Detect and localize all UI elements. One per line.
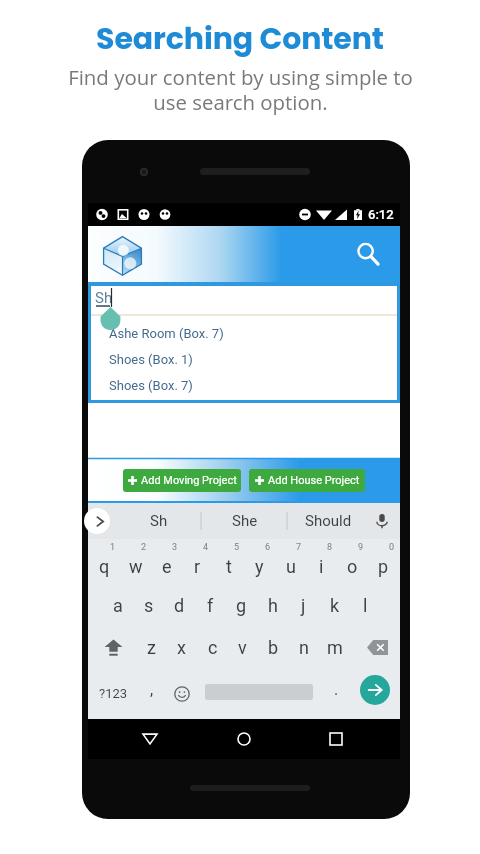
button[interactable]: Add Moving Project	[123, 469, 241, 492]
staticText: .	[334, 680, 339, 699]
button[interactable]: ?123	[89, 668, 137, 719]
staticText: l	[363, 595, 368, 616]
staticText: w	[129, 556, 143, 577]
staticText: o	[347, 556, 358, 577]
staticText: Sh	[150, 512, 168, 530]
button[interactable]: Shift	[93, 626, 133, 668]
button[interactable]: v	[227, 626, 258, 668]
button[interactable]: 5	[213, 539, 244, 584]
staticText: 5	[234, 542, 240, 553]
staticText: h	[268, 595, 278, 616]
button[interactable]: 7	[275, 539, 306, 584]
button[interactable]: f	[195, 584, 226, 626]
button[interactable]: m	[319, 626, 350, 668]
staticText: 3	[172, 542, 178, 553]
button[interactable]: Back	[130, 719, 170, 759]
button[interactable]: b	[258, 626, 289, 668]
staticText: r	[194, 556, 201, 577]
button[interactable]: k	[319, 584, 350, 626]
button[interactable]: n	[288, 626, 319, 668]
staticText: 8	[327, 542, 333, 553]
staticText: i	[319, 556, 324, 577]
staticText: 6	[265, 542, 271, 553]
button[interactable]: h	[257, 584, 288, 626]
button[interactable]: 9	[337, 539, 368, 584]
staticText: c	[208, 637, 218, 658]
button[interactable]: 2	[120, 539, 151, 584]
staticText: ,	[150, 680, 154, 699]
staticText: Shoes (Box. 7)	[109, 378, 193, 393]
staticText: Shoes (Box. 1)	[109, 352, 193, 367]
button[interactable]: 1	[89, 539, 120, 584]
button[interactable]: Expand suggestions	[84, 508, 110, 534]
staticText: q	[99, 556, 110, 577]
button[interactable]: Sh	[119, 503, 199, 539]
staticText: j	[301, 595, 306, 616]
button[interactable]: 4	[182, 539, 213, 584]
button[interactable]: Voice input	[366, 503, 398, 539]
button[interactable]: 3	[151, 539, 182, 584]
staticText: She	[232, 512, 258, 530]
staticText: m	[327, 637, 343, 658]
button[interactable]: s	[133, 584, 164, 626]
staticText: s	[144, 595, 154, 616]
staticText: 1	[110, 542, 116, 553]
staticText: Sh	[95, 289, 113, 307]
button[interactable]: c	[197, 626, 228, 668]
button[interactable]: d	[164, 584, 195, 626]
staticText: Find your content by using simple to use…	[68, 63, 413, 116]
staticText: f	[207, 595, 214, 616]
button[interactable]: j	[288, 584, 319, 626]
staticText: 0	[389, 542, 395, 553]
staticText: u	[286, 556, 296, 577]
staticText: b	[268, 637, 279, 658]
button[interactable]: z	[136, 626, 167, 668]
button[interactable]: .	[323, 668, 349, 719]
button[interactable]: Emoji	[167, 668, 197, 719]
staticText: v	[238, 637, 247, 658]
staticText: a	[113, 595, 123, 616]
button[interactable]: Home	[224, 719, 264, 759]
button[interactable]: l	[350, 584, 381, 626]
button[interactable]: 8	[306, 539, 337, 584]
staticText: Add House Project	[268, 474, 360, 487]
staticText: Add Moving Project	[141, 474, 237, 487]
staticText: Searching Content	[96, 18, 384, 60]
button[interactable]: She	[205, 503, 285, 539]
staticText: n	[299, 637, 309, 658]
staticText: 4	[203, 542, 209, 553]
staticText: p	[378, 556, 389, 577]
button[interactable]: Ashe Room (Box. 7)	[91, 322, 397, 348]
staticText: ?123	[99, 686, 128, 701]
staticText: k	[330, 595, 340, 616]
button[interactable]: Add House Project	[249, 469, 365, 492]
staticText: 7	[296, 542, 302, 553]
staticText: e	[162, 556, 172, 577]
button[interactable]: Should	[288, 503, 368, 539]
button[interactable]: 6	[244, 539, 275, 584]
button[interactable]: a	[102, 584, 133, 626]
staticText: Should	[305, 512, 352, 530]
button[interactable]: 0	[368, 539, 399, 584]
button[interactable]: g	[226, 584, 257, 626]
staticText: 9	[358, 542, 364, 553]
staticText: 2	[141, 542, 147, 553]
button[interactable]: Recent apps	[316, 719, 356, 759]
staticText: d	[174, 595, 185, 616]
button[interactable]: ,	[138, 668, 166, 719]
staticText: 6:12	[368, 207, 394, 222]
button[interactable]: x	[166, 626, 197, 668]
staticText: z	[147, 637, 156, 658]
staticText: g	[236, 595, 247, 616]
button[interactable]: Shoes (Box. 1)	[91, 348, 397, 374]
staticText: y	[255, 556, 264, 577]
staticText: Ashe Room (Box. 7)	[109, 326, 224, 341]
button[interactable]: Shoes (Box. 7)	[91, 374, 397, 400]
button[interactable]: Space	[205, 668, 313, 719]
staticText: x	[177, 637, 186, 658]
button[interactable]: Search	[348, 234, 388, 274]
button[interactable]: Backspace	[357, 626, 397, 668]
staticText: t	[226, 556, 232, 577]
button[interactable]: Enter	[360, 675, 390, 705]
